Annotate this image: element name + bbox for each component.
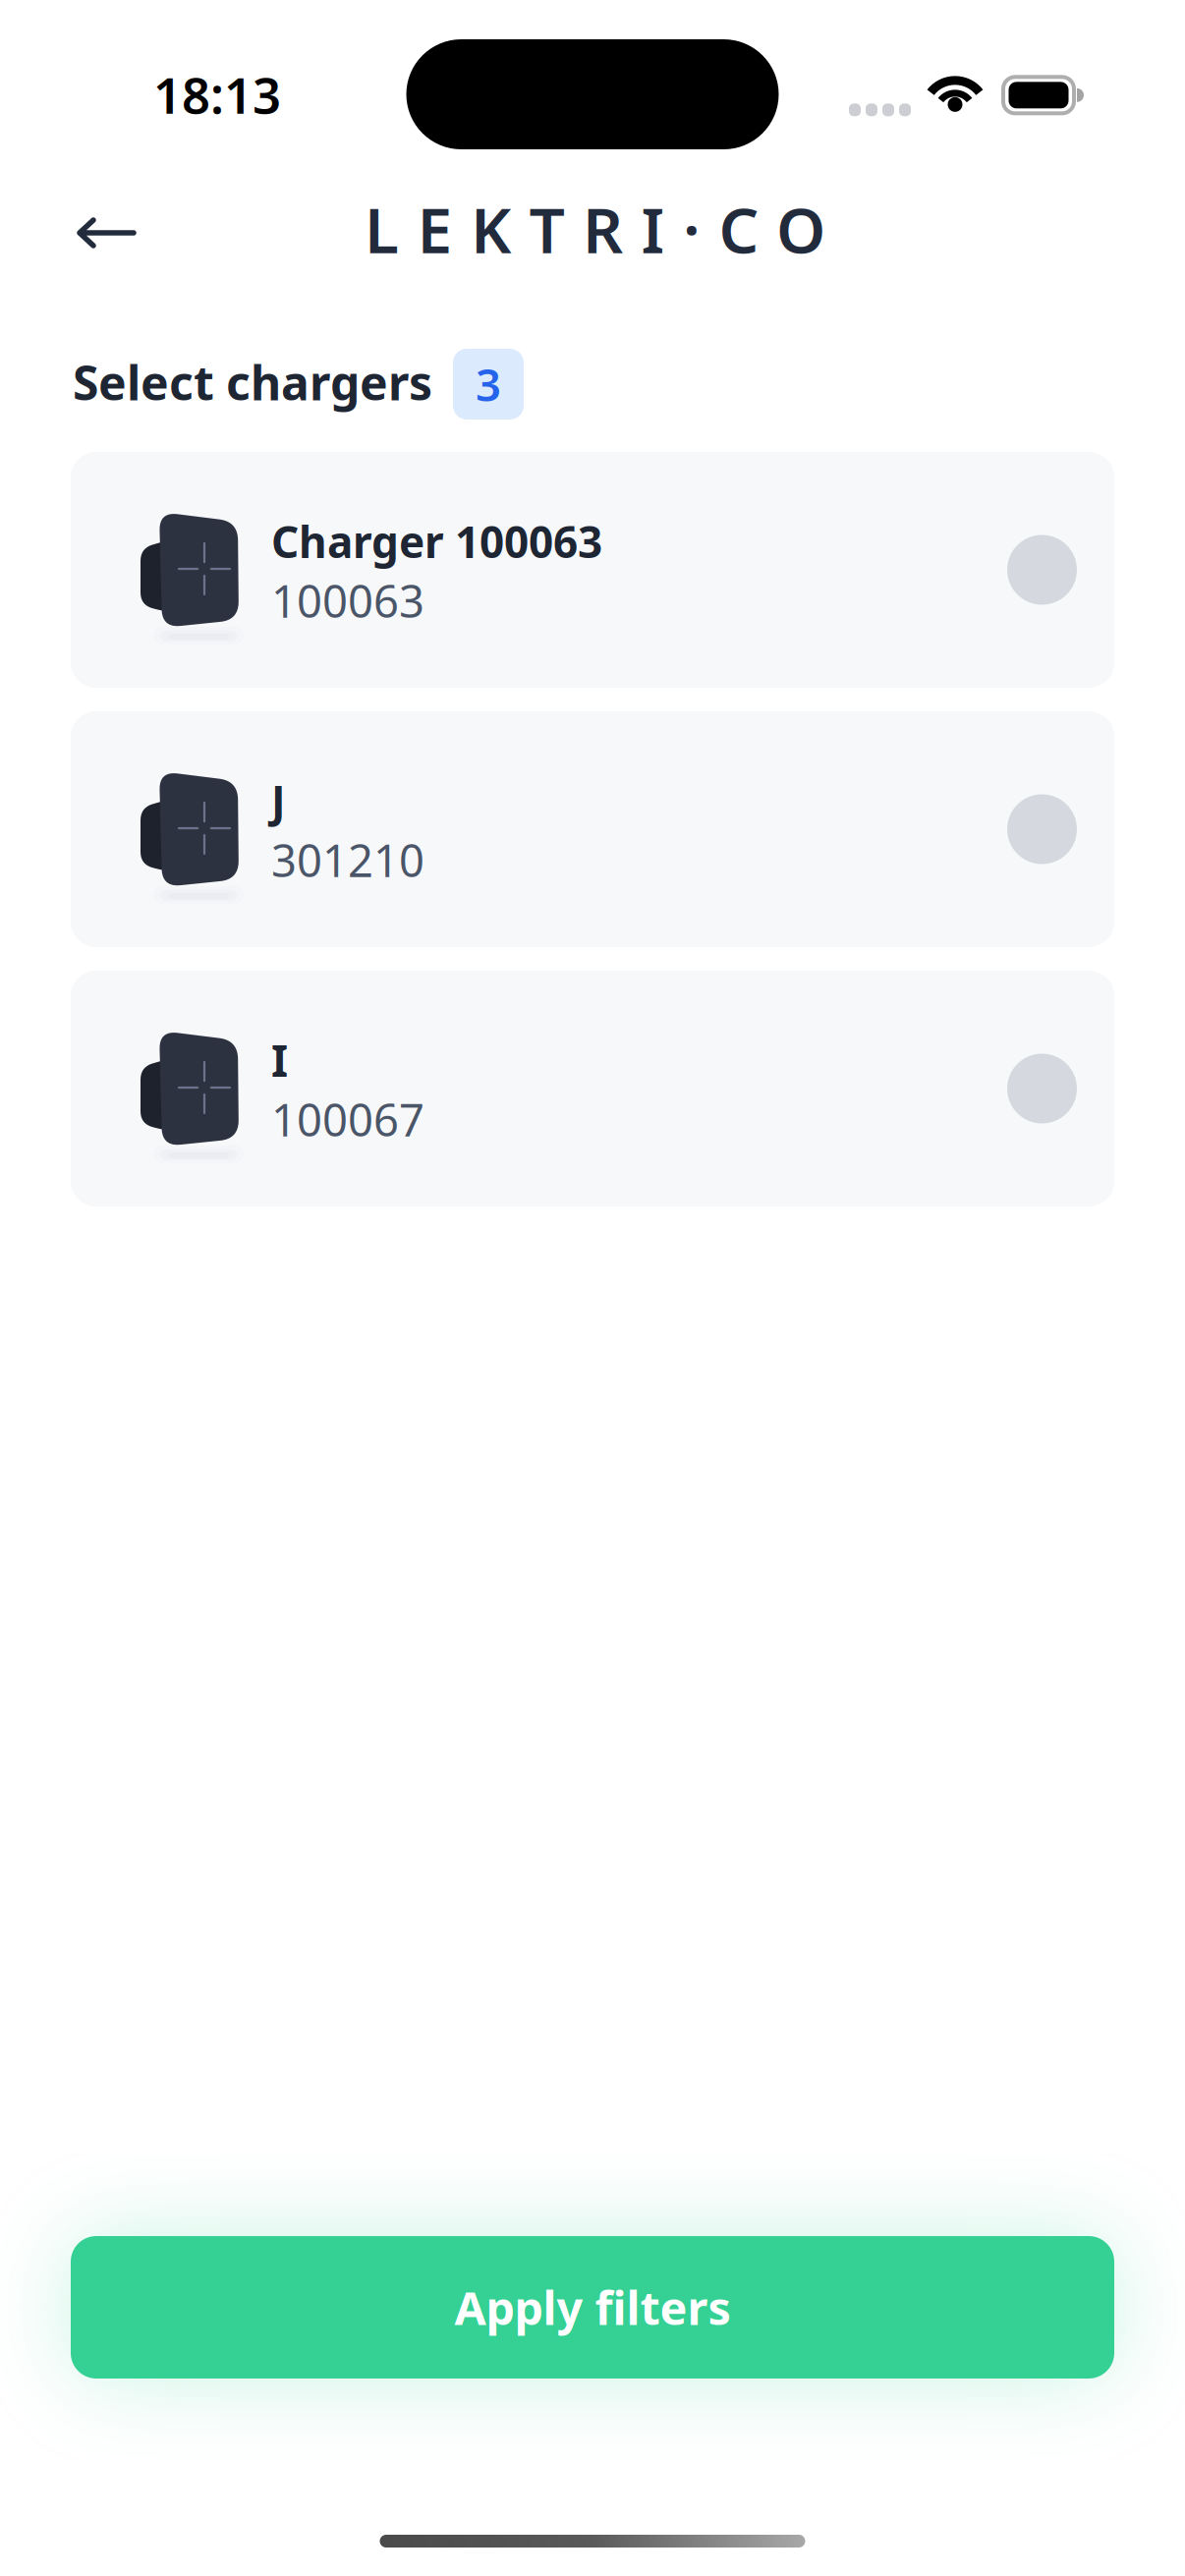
staticText: 301210 — [271, 830, 424, 889]
staticText: 3 — [476, 355, 501, 414]
staticText: 100063 — [271, 571, 424, 630]
staticText: 18:13 — [153, 61, 281, 127]
staticText: Select chargers — [73, 351, 432, 413]
staticText: 100067 — [271, 1090, 424, 1149]
button[interactable]: J — [71, 711, 1114, 947]
button[interactable]: Select J — [984, 771, 1114, 888]
staticText: LEKTRI·CO — [365, 187, 825, 271]
button[interactable]: I — [71, 971, 1114, 1206]
button[interactable]: Select Charger 100063 — [984, 511, 1114, 628]
button[interactable]: Charger 100063 — [71, 452, 1114, 688]
button[interactable]: Back — [0, 180, 165, 278]
staticText: Charger 100063 — [271, 513, 602, 570]
staticText: J — [271, 772, 286, 829]
button[interactable]: Select I — [984, 1030, 1114, 1147]
staticText: Apply filters — [454, 2277, 731, 2338]
staticText: I — [271, 1031, 288, 1089]
button[interactable]: Apply filters — [71, 2236, 1114, 2379]
